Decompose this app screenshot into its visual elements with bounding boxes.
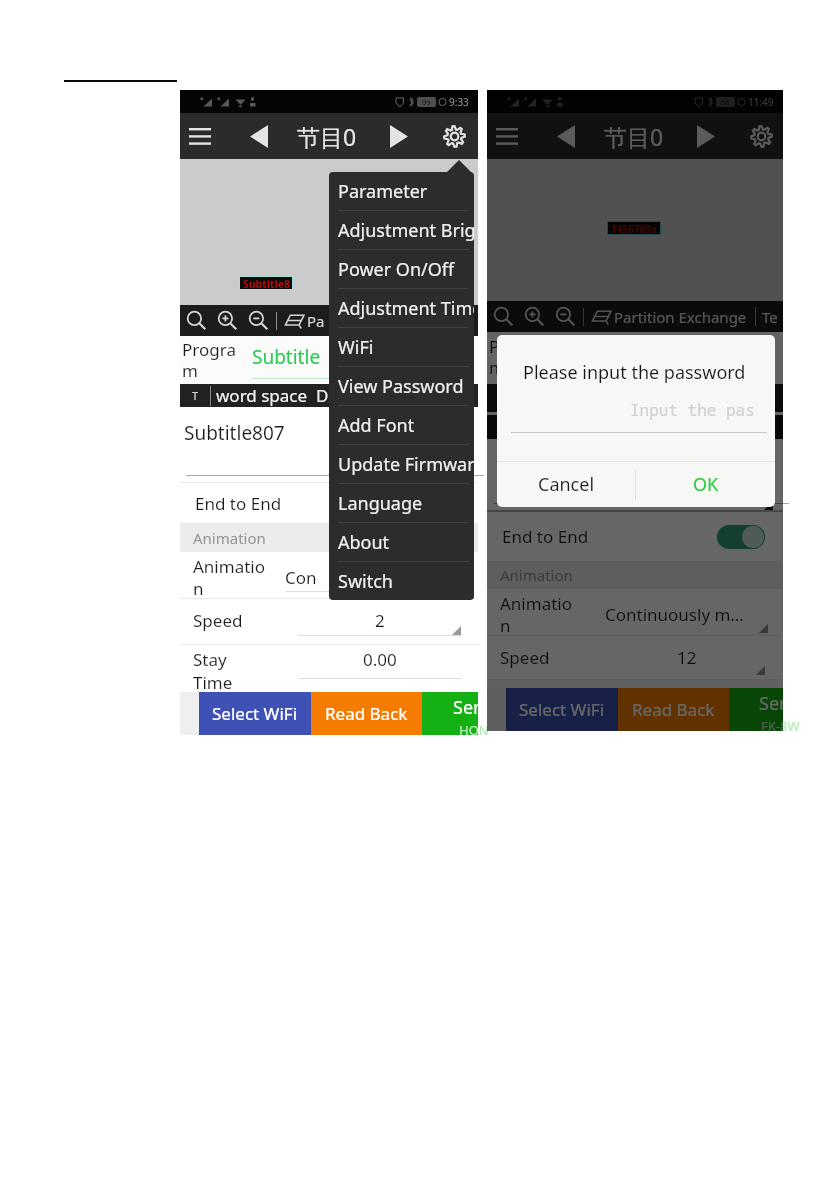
staticText: Add Font: [338, 413, 415, 438]
button[interactable]: Adjustment Brig: [329, 211, 474, 249]
staticText: 9:33: [449, 95, 469, 109]
button[interactable]: Add Font: [329, 406, 474, 444]
staticText: Animation: [500, 565, 573, 585]
button[interactable]: Power On/Off: [329, 250, 474, 288]
staticText: 2: [375, 609, 385, 632]
staticText: Subtitle: [252, 344, 321, 370]
button[interactable]: Previous: [229, 113, 289, 159]
staticText: Please input the password: [523, 360, 746, 385]
button[interactable]: Select WiFi: [199, 692, 311, 735]
staticText: WiFi: [338, 335, 374, 360]
staticText: Language: [338, 491, 423, 516]
staticText: OK: [693, 472, 719, 497]
button[interactable]: Speed: [180, 599, 478, 645]
staticText: 节目0: [604, 121, 664, 152]
button[interactable]: Parameter: [329, 172, 474, 210]
staticText: Select WiFi: [519, 698, 605, 721]
button[interactable]: Animatio n: [180, 552, 478, 599]
button[interactable]: Menu: [180, 113, 224, 159]
staticText: Send: [759, 691, 802, 716]
button[interactable]: Zoom out: [550, 301, 581, 332]
button[interactable]: Cancel: [497, 462, 635, 507]
staticText: Power On/Off: [338, 257, 455, 282]
staticText: Read Back: [325, 702, 408, 725]
staticText: 12: [677, 646, 697, 669]
staticText: Read Back: [632, 698, 715, 721]
staticText: Te: [340, 311, 356, 331]
staticText: Cancel: [538, 472, 595, 497]
button[interactable]: About: [329, 523, 474, 561]
button[interactable]: End to End: [180, 483, 478, 523]
button[interactable]: WiFi: [329, 328, 474, 366]
staticText: 86: [721, 97, 730, 107]
staticText: Adjustment Brig: [338, 218, 474, 243]
staticText: Animatio n: [500, 592, 572, 637]
staticText: HON: [459, 721, 489, 735]
staticText: View Password: [338, 374, 464, 399]
button[interactable]: Zoom in: [519, 301, 550, 332]
staticText: 1456789a: [611, 222, 658, 234]
staticText: Partition Exchange: [614, 307, 747, 327]
staticText: 11:49: [748, 95, 774, 109]
button[interactable]: End to End toggle: [717, 525, 765, 549]
button[interactable]: Read Back: [311, 692, 422, 735]
button[interactable]: Search: [487, 301, 519, 332]
button[interactable]: Play: [369, 113, 429, 159]
button[interactable]: Language: [329, 484, 474, 522]
staticText: Speed: [193, 609, 243, 632]
button[interactable]: 节目0: [596, 113, 672, 159]
button[interactable]: Previous: [536, 113, 596, 159]
button[interactable]: Animatio n: [487, 589, 783, 636]
button[interactable]: Adjustment Time: [329, 289, 474, 327]
staticText: End to End: [195, 492, 282, 515]
staticText: T: [192, 388, 199, 403]
staticText: Speed: [500, 646, 550, 669]
staticText: About: [338, 530, 390, 555]
staticText: Select WiFi: [212, 702, 298, 725]
button[interactable]: View Password: [329, 367, 474, 405]
staticText: Progra m: [489, 335, 543, 379]
button[interactable]: Menu: [487, 113, 531, 159]
button[interactable]: Update Firmwar: [329, 445, 474, 483]
button[interactable]: Play: [676, 113, 736, 159]
staticText: 0.00: [363, 648, 397, 671]
staticText: Progra m: [182, 338, 236, 382]
button[interactable]: Settings: [737, 113, 785, 159]
button[interactable]: Zoom out: [243, 305, 274, 336]
staticText: Pa: [307, 311, 325, 331]
staticText: Stay Time: [193, 648, 233, 694]
staticText: 99: [422, 97, 431, 107]
staticText: Update Firmwar: [338, 452, 474, 477]
staticText: Te: [762, 307, 778, 327]
button[interactable]: Select WiFi: [506, 688, 618, 731]
staticText: Con: [285, 566, 317, 589]
button[interactable]: Partition Exchange: [592, 301, 778, 332]
button[interactable]: Switch: [329, 562, 474, 600]
button[interactable]: Send: [729, 688, 783, 731]
staticText: Send: [453, 695, 496, 720]
staticText: word space D: [216, 384, 329, 407]
staticText: FK-8W: [761, 717, 800, 731]
button[interactable]: Settings: [430, 113, 478, 159]
staticText: Subtitle807: [184, 420, 285, 446]
staticText: Adjustment Time: [338, 296, 474, 321]
staticText: Continuously m…: [605, 603, 744, 626]
staticText: Animatio n: [193, 555, 265, 600]
staticText: Parameter: [338, 179, 428, 204]
button[interactable]: 节目0: [289, 113, 365, 159]
button[interactable]: End to End: [487, 512, 783, 561]
staticText: 节目0: [297, 121, 357, 152]
button[interactable]: Send: [422, 692, 478, 735]
staticText: Input the pas: [630, 399, 755, 421]
staticText: Subtitle8: [243, 277, 290, 289]
button[interactable]: Search: [180, 305, 212, 336]
button[interactable]: Read Back: [618, 688, 729, 731]
staticText: Switch: [338, 569, 393, 594]
button[interactable]: Pa: [285, 305, 356, 336]
button[interactable]: Speed: [487, 636, 783, 680]
button[interactable]: OK: [636, 462, 775, 507]
button[interactable]: Zoom in: [212, 305, 243, 336]
